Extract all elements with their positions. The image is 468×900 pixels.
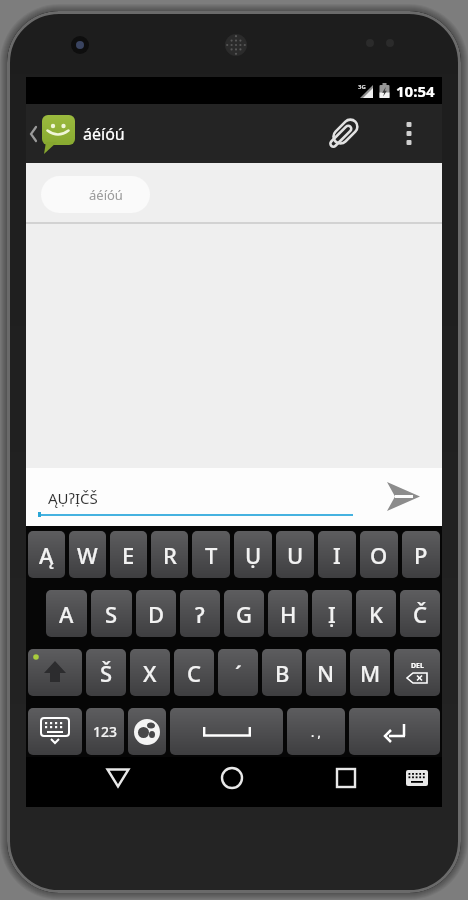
staticText: I	[333, 540, 341, 570]
staticText: 10:54	[396, 81, 435, 101]
button[interactable]	[212, 758, 252, 796]
staticText: H	[280, 599, 297, 629]
staticText: S	[105, 599, 118, 629]
button[interactable]: A	[46, 590, 87, 637]
button[interactable]: P	[402, 531, 440, 578]
button[interactable]: D	[136, 590, 176, 637]
button[interactable]: O	[360, 531, 398, 578]
staticText: M	[360, 658, 381, 688]
staticText: Č	[413, 599, 427, 629]
button[interactable]	[128, 708, 166, 755]
button[interactable]	[386, 481, 420, 512]
button[interactable]	[405, 769, 429, 787]
button[interactable]: M	[350, 649, 390, 696]
staticText: Ụ	[245, 540, 262, 570]
button[interactable]	[170, 708, 283, 755]
button[interactable]: áéíóú	[26, 104, 442, 163]
button[interactable]	[326, 758, 366, 796]
staticText: Ị	[328, 599, 336, 629]
button[interactable]: Č	[400, 590, 440, 637]
staticText: P	[414, 540, 428, 570]
staticText: C	[187, 658, 201, 688]
button[interactable]: C	[174, 649, 214, 696]
button[interactable]	[28, 708, 82, 755]
button[interactable]: G	[224, 590, 264, 637]
button[interactable]	[98, 758, 138, 796]
staticText: U	[287, 540, 304, 570]
staticText: K	[369, 599, 383, 629]
button[interactable]: Ą	[28, 531, 65, 578]
staticText: O	[370, 540, 388, 570]
button[interactable]: Š	[86, 649, 126, 696]
button[interactable]: T	[192, 531, 230, 578]
button[interactable]: DEL	[394, 649, 440, 696]
staticText: áéíóú	[83, 123, 125, 145]
button[interactable]	[406, 120, 412, 148]
staticText: Ą	[39, 540, 54, 570]
button[interactable]: Ụ	[234, 531, 272, 578]
button[interactable]: R	[151, 531, 188, 578]
staticText: N	[317, 658, 335, 688]
button[interactable]: E	[110, 531, 147, 578]
button[interactable]: U	[276, 531, 314, 578]
button[interactable]: Ị	[312, 590, 352, 637]
staticText: E	[122, 540, 135, 570]
staticText: A	[59, 599, 74, 629]
button[interactable]: S	[91, 590, 132, 637]
button[interactable]: H	[268, 590, 308, 637]
staticText: X	[143, 658, 157, 688]
staticText: ´	[235, 658, 242, 688]
staticText: 3G	[358, 83, 366, 91]
staticText: ĄỤʔỊČŠ	[48, 488, 98, 508]
button[interactable]: I	[318, 531, 356, 578]
button[interactable]: áéíóú	[41, 176, 150, 213]
button[interactable]	[349, 708, 440, 755]
staticText: DEL	[411, 661, 424, 671]
staticText: W	[77, 540, 98, 570]
button[interactable]: . ,	[287, 708, 345, 755]
button[interactable]: ʔ	[180, 590, 220, 637]
button[interactable]: W	[69, 531, 106, 578]
staticText: ʔ	[195, 599, 205, 629]
button[interactable]	[326, 116, 362, 152]
staticText: B	[275, 658, 290, 688]
staticText: T	[205, 540, 218, 570]
button[interactable]: X	[130, 649, 170, 696]
button[interactable]: K	[356, 590, 396, 637]
staticText: R	[163, 540, 177, 570]
staticText: . ,	[311, 724, 321, 740]
staticText: 123	[93, 722, 118, 741]
button[interactable]: ´	[218, 649, 258, 696]
button[interactable]	[28, 649, 82, 696]
staticText: áéíóú	[89, 186, 123, 204]
button[interactable]: N	[306, 649, 346, 696]
staticText: Š	[100, 658, 113, 688]
button[interactable]: B	[262, 649, 302, 696]
button[interactable]: 123	[86, 708, 124, 755]
staticText: G	[236, 599, 252, 629]
staticText: D	[148, 599, 165, 629]
